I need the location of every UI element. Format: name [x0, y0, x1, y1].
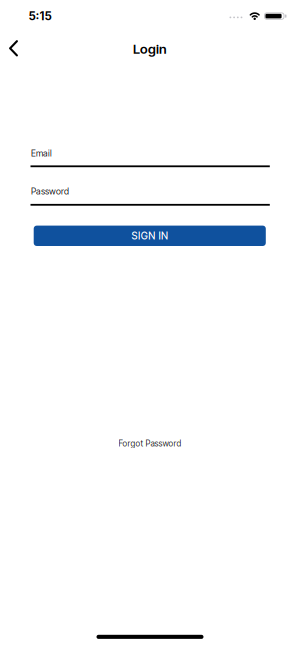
button[interactable]: Back — [0, 30, 28, 62]
staticText: SIGN IN — [131, 230, 168, 242]
staticText: Password — [31, 186, 69, 196]
button[interactable]: Forgot Password — [118, 438, 181, 448]
staticText: Forgot Password — [118, 438, 181, 448]
staticText: Login — [133, 41, 167, 57]
button[interactable]: SIGN IN — [34, 226, 266, 246]
staticText: Email — [31, 148, 52, 158]
staticText: 5:15 — [28, 9, 51, 23]
